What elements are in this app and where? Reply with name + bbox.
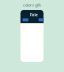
staticText: colors gifs <box>23 2 41 8</box>
staticText: Title <box>29 12 37 17</box>
